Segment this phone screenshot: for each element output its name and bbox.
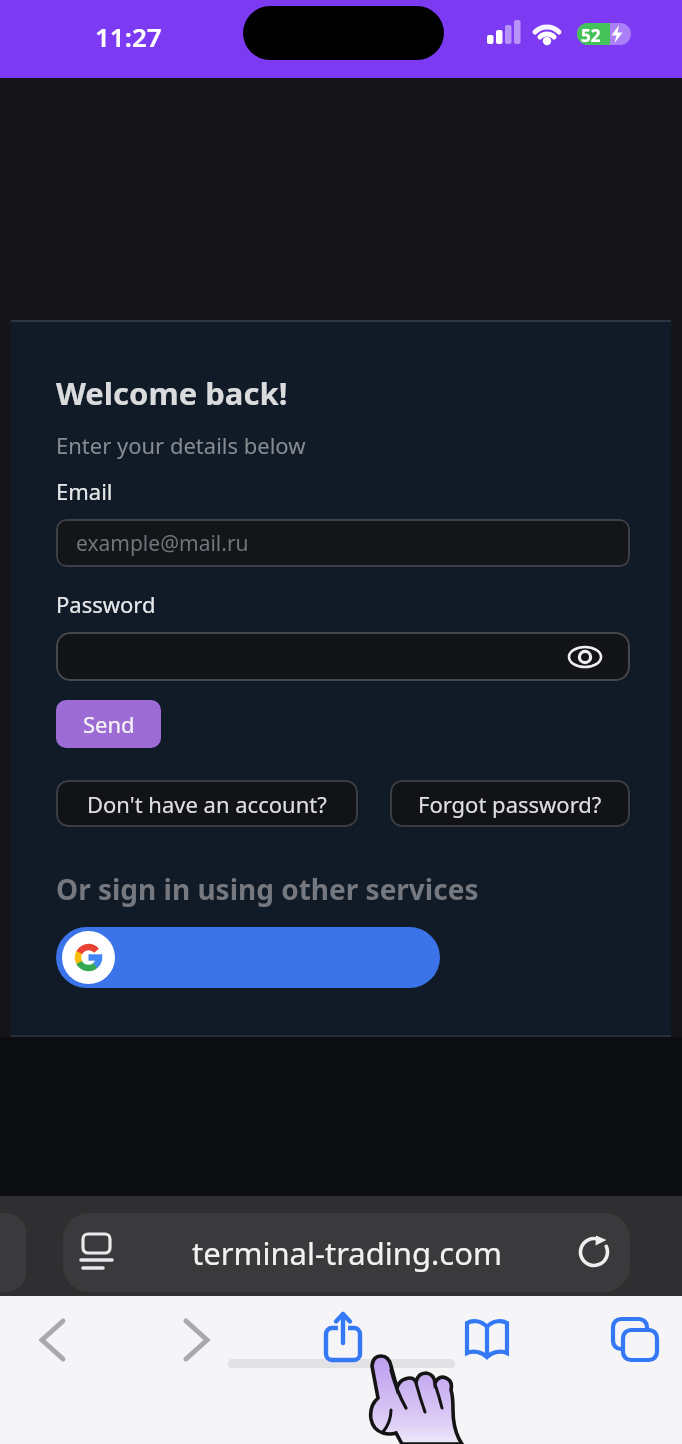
staticText: Enter your details below	[56, 430, 306, 460]
button[interactable]	[461, 1312, 513, 1368]
staticText: 52	[581, 24, 601, 47]
button[interactable]	[28, 1312, 78, 1370]
button[interactable]	[56, 632, 630, 681]
staticText: Password	[56, 589, 156, 619]
staticText: Send	[83, 709, 135, 739]
staticText: Welcome back!	[56, 372, 288, 414]
staticText: 11:27	[95, 19, 162, 54]
staticText: Or sign in using other services	[56, 870, 479, 908]
button[interactable]: example@mail.ru	[56, 519, 630, 567]
staticText: Don't have an account?	[87, 789, 327, 819]
button[interactable]: Don't have an account?	[56, 780, 358, 827]
button[interactable]: terminal-trading.com	[63, 1213, 630, 1292]
staticText: Email	[56, 476, 113, 506]
button[interactable]	[172, 1312, 222, 1370]
button[interactable]	[317, 1308, 369, 1368]
button[interactable]	[56, 927, 440, 988]
staticText: Forgot password?	[418, 789, 602, 819]
button[interactable]	[606, 1312, 662, 1368]
button[interactable]: Forgot password?	[390, 780, 630, 827]
staticText: terminal-trading.com	[192, 1232, 502, 1274]
staticText: example@mail.ru	[76, 529, 249, 558]
button[interactable]: Send	[56, 700, 161, 748]
